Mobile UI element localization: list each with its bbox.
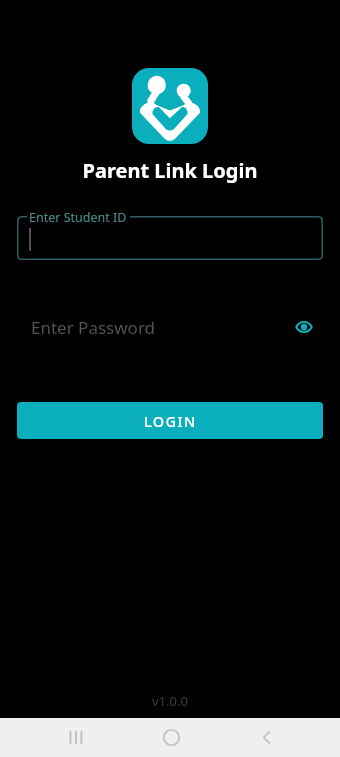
staticText: v1.0.0	[0, 692, 340, 710]
button[interactable]	[17, 216, 323, 260]
staticText: Enter Student ID	[29, 209, 127, 226]
button[interactable]: Back	[242, 718, 290, 757]
button[interactable]: Home	[147, 718, 195, 757]
button[interactable]: LOGIN	[17, 402, 323, 439]
staticText: Enter Password	[31, 316, 156, 339]
button[interactable]: Enter Password	[17, 305, 323, 349]
staticText: LOGIN	[144, 411, 197, 431]
staticText: Parent Link Login	[0, 157, 340, 184]
button[interactable]: Show password	[289, 312, 319, 342]
button[interactable]: Recents	[51, 718, 99, 757]
